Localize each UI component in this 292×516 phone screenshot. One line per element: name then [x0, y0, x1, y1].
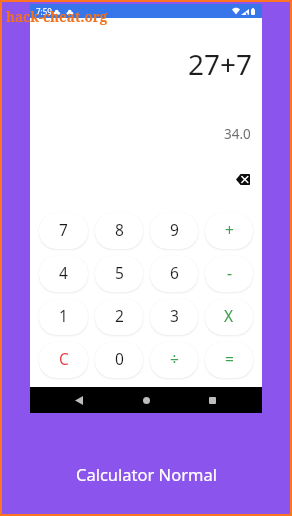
staticText: 1 — [59, 305, 68, 326]
button[interactable]: C — [39, 342, 88, 378]
staticText: 7 — [59, 219, 68, 240]
button[interactable]: 5 — [95, 256, 143, 292]
button[interactable]: - — [205, 256, 253, 292]
staticText: C — [59, 348, 69, 369]
staticText: 4 — [59, 262, 68, 283]
staticText: X — [224, 305, 234, 326]
staticText: 6 — [170, 262, 179, 283]
staticText: hack-cheat.org — [6, 8, 108, 26]
staticText: - — [227, 262, 232, 283]
button[interactable]: 7 — [39, 213, 88, 249]
button[interactable]: 0 — [95, 342, 143, 378]
staticText: 2 — [115, 305, 124, 326]
staticText: 5 — [115, 262, 124, 283]
staticText: 0 — [115, 348, 124, 369]
button[interactable]: 1 — [39, 299, 88, 335]
staticText: 9 — [170, 219, 179, 240]
staticText: 7:59 — [36, 6, 52, 17]
button[interactable]: X — [205, 299, 253, 335]
staticText: 8 — [115, 219, 124, 240]
staticText: ÷ — [170, 348, 179, 369]
button[interactable]: Recents — [194, 387, 230, 413]
button[interactable]: Back — [61, 387, 97, 413]
button[interactable]: 2 — [95, 299, 143, 335]
staticText: = — [225, 348, 234, 369]
staticText: 3 — [170, 305, 179, 326]
button[interactable]: 3 — [150, 299, 198, 335]
button[interactable]: 4 — [39, 256, 88, 292]
button[interactable]: + — [205, 213, 253, 249]
button[interactable]: 8 — [95, 213, 143, 249]
button[interactable]: ÷ — [150, 342, 198, 378]
staticText: 27+7 — [188, 45, 253, 83]
staticText: + — [225, 219, 234, 240]
staticText: Calculator Normal — [76, 463, 217, 485]
button[interactable]: 6 — [150, 256, 198, 292]
button[interactable]: = — [205, 342, 253, 378]
button[interactable]: Home — [128, 387, 164, 413]
button[interactable]: 9 — [150, 213, 198, 249]
staticText: 34.0 — [224, 125, 251, 143]
button[interactable]: Backspace — [236, 174, 250, 185]
